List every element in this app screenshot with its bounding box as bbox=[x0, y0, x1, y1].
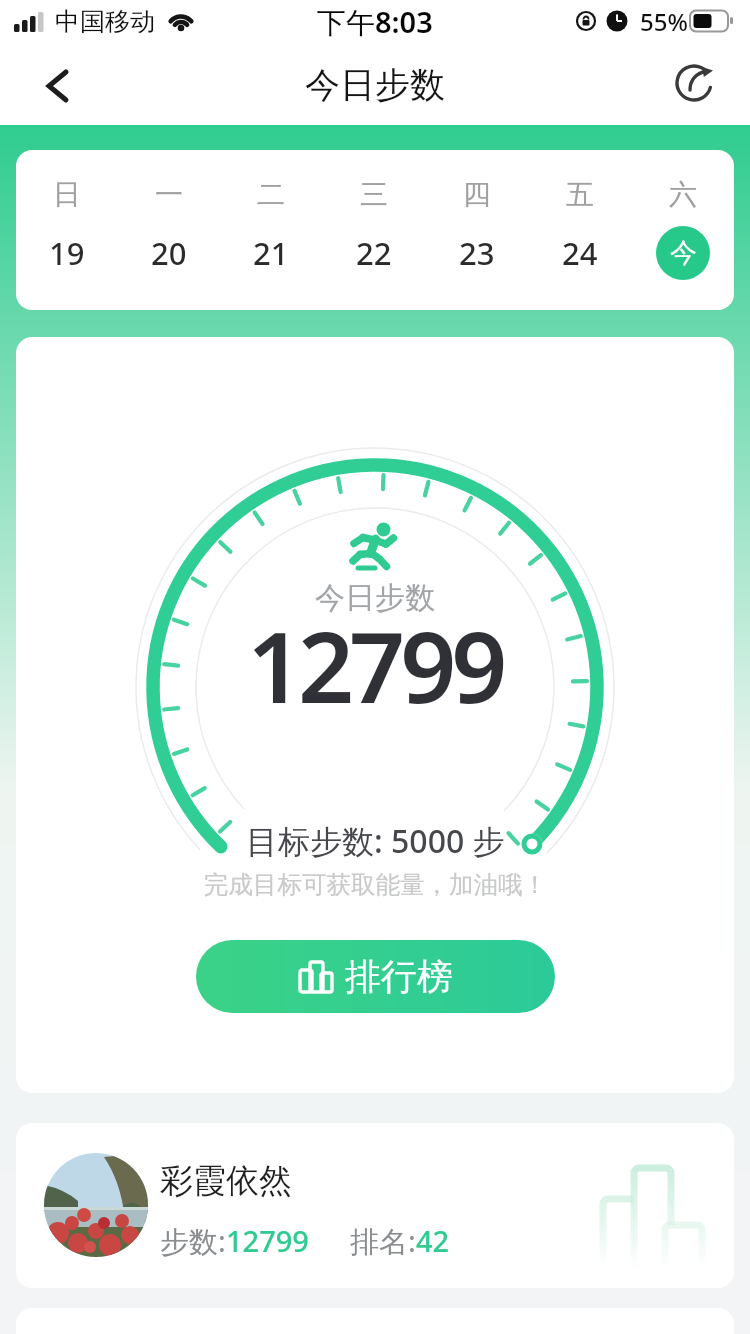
staticText: 下午8:03 bbox=[317, 2, 433, 42]
button[interactable]: 二 bbox=[220, 150, 322, 310]
staticText: 今日步数 bbox=[305, 63, 445, 107]
button[interactable]: 六 bbox=[631, 150, 734, 310]
button[interactable]: 四 bbox=[425, 150, 528, 310]
staticText: 今日步数 bbox=[315, 579, 435, 617]
button[interactable]: 日 bbox=[16, 150, 118, 310]
staticText: 55% bbox=[640, 5, 688, 38]
staticText: 19 bbox=[49, 232, 85, 274]
staticText: 一 bbox=[155, 177, 183, 212]
staticText: 五 bbox=[566, 177, 594, 212]
staticText: 21 bbox=[253, 232, 289, 274]
button[interactable] bbox=[0, 44, 60, 125]
staticText: 目标步数: 5000 步 bbox=[246, 819, 505, 863]
staticText: 24 bbox=[562, 232, 598, 274]
staticText: 日 bbox=[53, 177, 81, 212]
staticText: 步数: bbox=[160, 1221, 226, 1261]
staticText: 排名: bbox=[350, 1221, 416, 1261]
staticText: 彩霞依然 bbox=[160, 1160, 292, 1202]
staticText: 42 bbox=[416, 1221, 450, 1260]
button[interactable]: 一 bbox=[118, 150, 220, 310]
staticText: 三 bbox=[360, 177, 388, 212]
staticText: 中国移动 bbox=[55, 6, 155, 37]
staticText: 二 bbox=[257, 177, 285, 212]
staticText: 四 bbox=[463, 177, 491, 212]
staticText: 六 bbox=[669, 177, 697, 212]
staticText: 23 bbox=[459, 232, 495, 274]
button[interactable]: 五 bbox=[528, 150, 631, 310]
staticText: 12799 bbox=[247, 598, 503, 731]
staticText: 20 bbox=[151, 232, 187, 274]
staticText: 12799 bbox=[226, 1221, 309, 1260]
button[interactable]: 三 bbox=[322, 150, 425, 310]
staticText: 排行榜 bbox=[345, 954, 453, 999]
staticText: 22 bbox=[356, 232, 392, 274]
button[interactable]: 排行榜 bbox=[196, 940, 555, 1013]
button[interactable] bbox=[664, 53, 724, 113]
button[interactable]: 彩霞依然 bbox=[16, 1123, 734, 1288]
staticText: 完成目标可获取能量，加油哦！ bbox=[204, 869, 547, 900]
staticText: 今 bbox=[670, 236, 697, 270]
